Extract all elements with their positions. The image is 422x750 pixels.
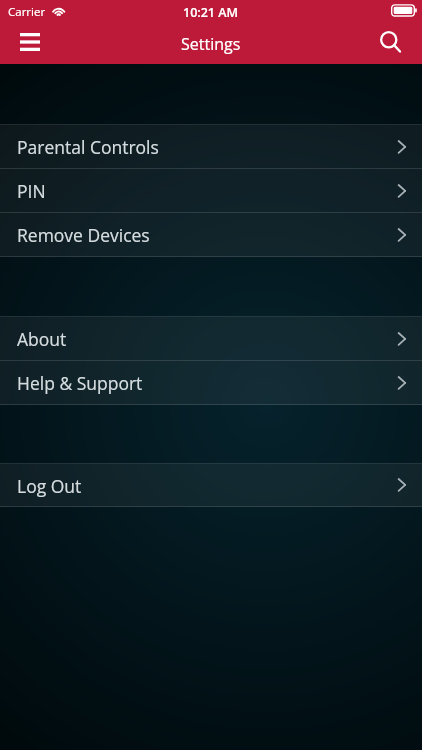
button[interactable]: Search bbox=[368, 24, 422, 64]
button[interactable]: Remove Devices bbox=[0, 213, 422, 257]
button[interactable]: Parental Controls bbox=[0, 125, 422, 169]
staticText: Carrier bbox=[8, 4, 46, 20]
button[interactable]: Help & Support bbox=[0, 361, 422, 405]
staticText: About bbox=[17, 327, 67, 351]
staticText: Help & Support bbox=[17, 371, 143, 395]
staticText: PIN bbox=[17, 179, 46, 203]
button[interactable]: About bbox=[0, 317, 422, 361]
button[interactable]: Menu bbox=[0, 24, 60, 64]
staticText: 10:21 AM bbox=[183, 4, 239, 21]
staticText: Log Out bbox=[17, 474, 82, 498]
staticText: Settings bbox=[181, 33, 241, 55]
staticText: Remove Devices bbox=[17, 223, 150, 247]
staticText: Parental Controls bbox=[17, 135, 159, 159]
button[interactable]: Log Out bbox=[0, 464, 422, 507]
button[interactable]: PIN bbox=[0, 169, 422, 213]
